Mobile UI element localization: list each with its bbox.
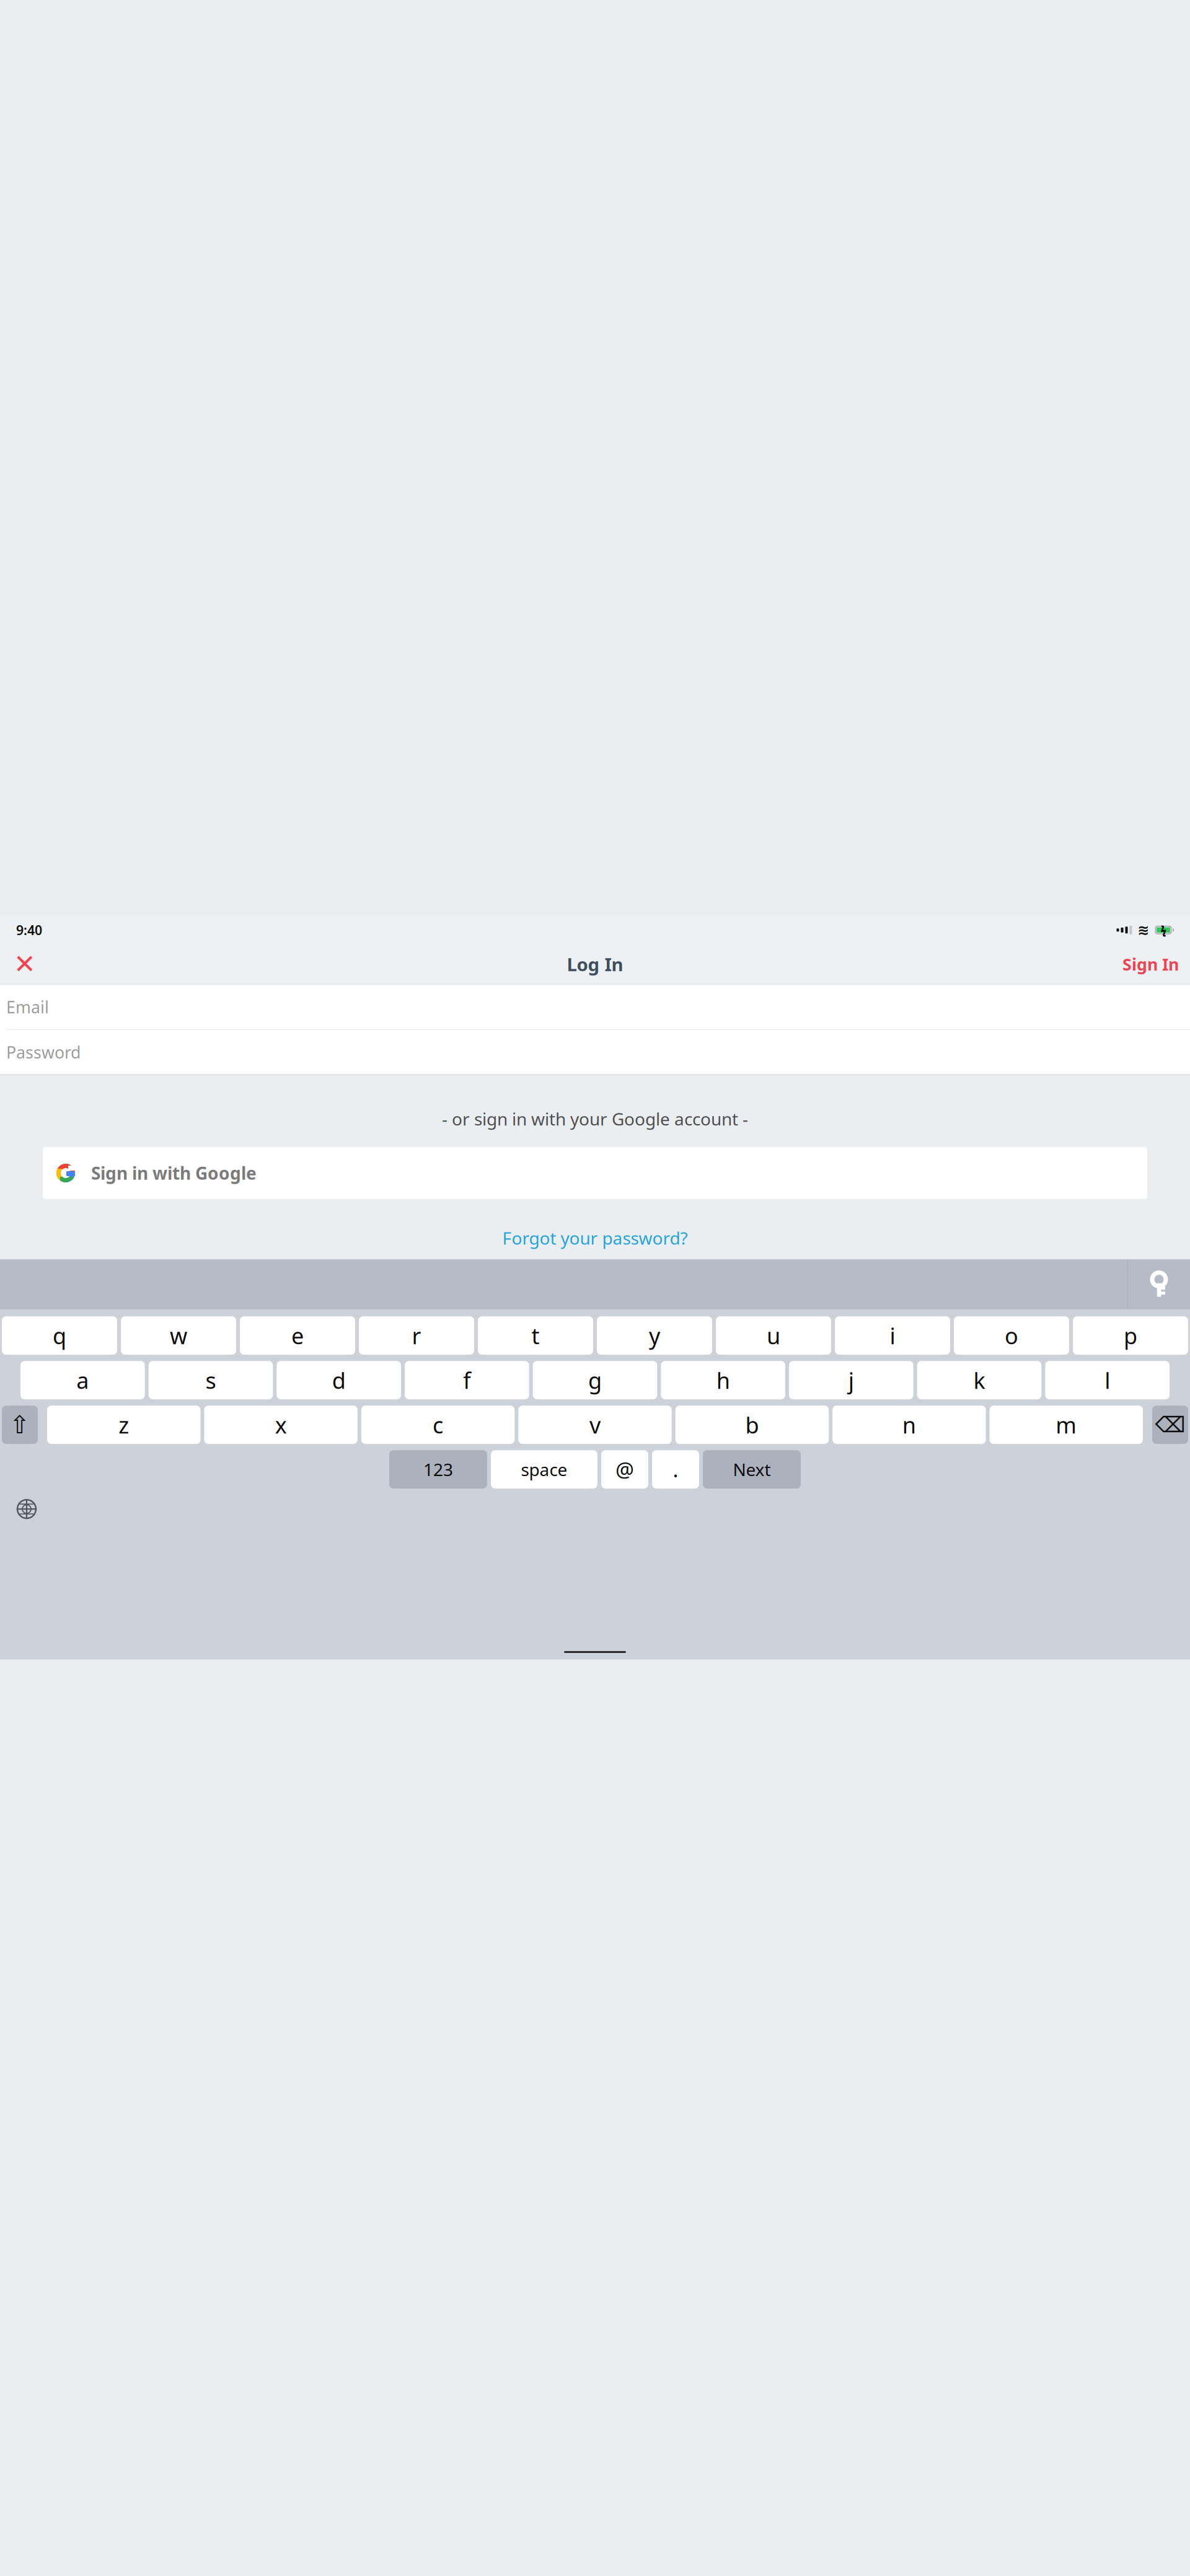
button[interactable]: Next keyboard — [7, 1492, 46, 1526]
button[interactable]: Passwords — [1128, 1259, 1190, 1310]
button[interactable]: Delete — [1152, 1406, 1188, 1444]
staticText: h — [716, 1365, 730, 1395]
button[interactable]: Password — [0, 1030, 1190, 1074]
button[interactable]: h — [661, 1361, 785, 1399]
button[interactable]: u — [716, 1316, 831, 1355]
button[interactable]: space — [491, 1450, 597, 1489]
button[interactable]: z — [47, 1406, 200, 1444]
button[interactable]: a — [20, 1361, 145, 1399]
button[interactable]: k — [917, 1361, 1041, 1399]
button[interactable]: g — [533, 1361, 657, 1399]
button[interactable]: l — [1045, 1361, 1170, 1399]
staticText: ϟ — [1161, 923, 1166, 937]
button[interactable]: o — [954, 1316, 1069, 1355]
button[interactable]: j — [789, 1361, 913, 1399]
staticText: i — [890, 1321, 895, 1350]
staticText: d — [332, 1365, 346, 1395]
button[interactable]: Sign in with Google — [43, 1147, 1147, 1199]
button[interactable]: Sign In — [1117, 948, 1184, 980]
staticText: s — [205, 1365, 216, 1395]
staticText: q — [53, 1321, 66, 1350]
staticText: o — [1005, 1321, 1018, 1350]
staticText: Sign in with Google — [91, 1162, 257, 1185]
button[interactable]: p — [1073, 1316, 1188, 1355]
staticText: t — [531, 1321, 540, 1350]
staticText: e — [291, 1321, 304, 1350]
button[interactable]: Email — [0, 985, 1190, 1029]
button[interactable]: i — [835, 1316, 950, 1355]
staticText: y — [649, 1321, 660, 1350]
button[interactable]: @ — [601, 1450, 648, 1489]
button[interactable]: d — [277, 1361, 401, 1399]
button[interactable]: b — [675, 1406, 829, 1444]
staticText: 123 — [423, 1458, 453, 1481]
button[interactable]: y — [597, 1316, 712, 1355]
staticText: v — [589, 1410, 601, 1440]
button[interactable]: Next — [703, 1450, 801, 1489]
staticText: k — [973, 1365, 985, 1395]
staticText: m — [1056, 1410, 1077, 1440]
button[interactable]: r — [359, 1316, 474, 1355]
staticText: p — [1124, 1321, 1137, 1350]
staticText: u — [767, 1321, 780, 1350]
staticText: z — [119, 1410, 129, 1440]
staticText: Sign In — [1122, 953, 1179, 975]
button[interactable]: c — [361, 1406, 515, 1444]
button[interactable]: x — [204, 1406, 357, 1444]
staticText: ≋ — [1138, 922, 1149, 938]
staticText: n — [902, 1410, 916, 1440]
staticText: . — [673, 1456, 678, 1483]
button[interactable]: f — [405, 1361, 529, 1399]
button[interactable]: e — [240, 1316, 355, 1355]
staticText: @ — [615, 1456, 634, 1483]
staticText: j — [848, 1365, 854, 1395]
button[interactable]: Shift — [2, 1406, 38, 1444]
staticText: r — [412, 1321, 421, 1350]
staticText: ⇧ — [9, 1411, 30, 1439]
button[interactable]: 123 — [389, 1450, 487, 1489]
staticText: Next — [733, 1458, 771, 1481]
staticText: a — [76, 1365, 89, 1395]
staticText: space — [521, 1458, 567, 1481]
staticText: Log In — [567, 952, 623, 976]
button[interactable]: t — [478, 1316, 593, 1355]
staticText: f — [463, 1365, 471, 1395]
staticText: 9:40 — [16, 921, 42, 939]
button[interactable]: v — [518, 1406, 672, 1444]
staticText: b — [745, 1410, 759, 1440]
staticText: Email — [6, 996, 49, 1018]
button[interactable]: s — [149, 1361, 273, 1399]
staticText: l — [1105, 1365, 1110, 1395]
button[interactable]: Close — [6, 948, 43, 980]
staticText: Forgot your password? — [502, 1226, 688, 1249]
button[interactable]: q — [2, 1316, 117, 1355]
button[interactable]: w — [121, 1316, 236, 1355]
button[interactable]: n — [832, 1406, 986, 1444]
staticText: ⌫ — [1155, 1413, 1185, 1437]
staticText: x — [275, 1410, 287, 1440]
staticText: - or sign in with your Google account - — [442, 1107, 748, 1130]
button[interactable]: m — [990, 1406, 1143, 1444]
staticText: Password — [6, 1041, 81, 1063]
staticText: g — [588, 1365, 602, 1395]
staticText: w — [170, 1321, 187, 1350]
staticText: ✕ — [14, 949, 36, 979]
button[interactable]: Forgot your password? — [495, 1221, 695, 1254]
button[interactable]: . — [652, 1450, 699, 1489]
staticText: c — [433, 1410, 443, 1440]
